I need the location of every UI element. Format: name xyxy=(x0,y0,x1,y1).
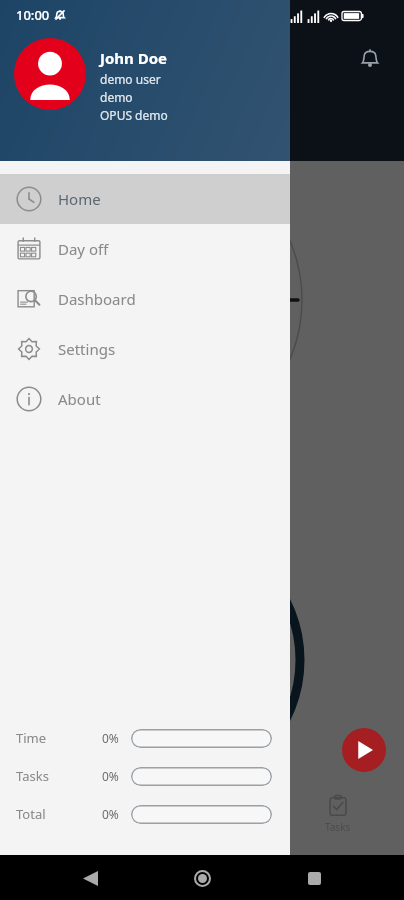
staticText: About xyxy=(58,389,101,409)
staticText: demo xyxy=(100,89,133,105)
staticText: Tasks xyxy=(325,820,351,834)
button[interactable]: Dashboard xyxy=(0,274,290,324)
staticText: John Doe xyxy=(100,48,168,68)
staticText: 0% xyxy=(102,768,119,784)
button[interactable]: About xyxy=(0,374,290,424)
staticText: Home xyxy=(58,189,101,209)
staticText: Tasks xyxy=(16,767,49,785)
staticText: 10:00 xyxy=(16,6,50,24)
button[interactable]: Start xyxy=(342,728,386,772)
button[interactable]: Recents xyxy=(292,856,336,900)
button[interactable]: Settings xyxy=(0,324,290,374)
staticText: Settings xyxy=(58,339,116,359)
staticText: Time xyxy=(16,729,47,747)
button[interactable]: Day off xyxy=(0,224,290,274)
staticText: demo user xyxy=(100,71,161,87)
button[interactable]: Back xyxy=(68,856,112,900)
staticText: Day off xyxy=(58,239,109,259)
button[interactable]: Profile photo xyxy=(14,38,86,110)
staticText: Dashboard xyxy=(58,289,136,309)
staticText: Total xyxy=(16,805,46,823)
button[interactable]: Notifications xyxy=(352,40,388,76)
button[interactable]: Home xyxy=(180,856,224,900)
staticText: 0% xyxy=(102,730,119,746)
staticText: OPUS demo xyxy=(100,107,168,123)
button[interactable]: Tasks xyxy=(312,795,364,834)
staticText: 0% xyxy=(102,806,119,822)
button[interactable]: Home xyxy=(0,174,290,224)
